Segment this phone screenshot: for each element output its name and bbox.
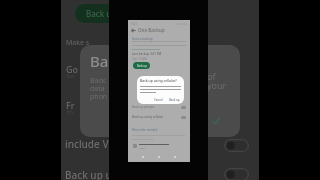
- staticText: Sep 13 AM: [132, 57, 147, 61]
- staticText: Back up using cellular?: [140, 78, 177, 83]
- staticText: Device backup: [132, 37, 153, 41]
- staticText: data: [90, 84, 105, 94]
- staticText: One Backup: [138, 27, 165, 33]
- staticText: Last backup 3:41 PM: [132, 52, 162, 56]
- staticText: your: [207, 79, 227, 91]
- button[interactable]: Back up: [133, 62, 150, 69]
- staticText: Cancel: [154, 98, 163, 102]
- staticText: Back up: [137, 64, 147, 68]
- button[interactable]: Cancel: [153, 97, 164, 103]
- staticText: 3:41: [131, 22, 137, 26]
- staticText: Back up us: [65, 168, 117, 180]
- button[interactable]: Back up: [168, 97, 181, 103]
- button[interactable]: Back up photos: [132, 104, 186, 110]
- button[interactable]: Back up: [75, 4, 145, 23]
- button[interactable]: Toggle: [224, 168, 249, 180]
- staticText: Back up photos: [132, 105, 155, 109]
- staticText: Back up: [169, 98, 180, 102]
- staticText: phon: [90, 92, 108, 102]
- staticText: th: [67, 108, 73, 116]
- staticText: include Vid: [65, 137, 118, 151]
- staticText: Bac: [90, 51, 116, 71]
- button[interactable]: Toggle: [224, 139, 249, 152]
- staticText: Back: [90, 76, 106, 86]
- staticText: Back up using cellular: [132, 115, 164, 119]
- staticText: Back up: [86, 8, 117, 19]
- button[interactable]: Back up using cellular: [132, 114, 186, 120]
- staticText: More info needed: [132, 128, 158, 132]
- staticText: Fr: [66, 99, 75, 111]
- button[interactable]: [131, 142, 185, 150]
- staticText: Make s: [66, 38, 90, 48]
- staticText: ba: [67, 72, 75, 80]
- staticText: of: [207, 70, 216, 82]
- button[interactable]: Back: [131, 28, 136, 33]
- staticText: Go: [66, 63, 79, 75]
